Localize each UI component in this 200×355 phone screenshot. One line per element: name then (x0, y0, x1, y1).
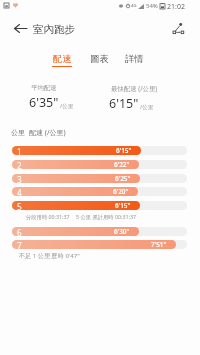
staticText: 6'15" (115, 201, 131, 210)
staticText: /公里 (60, 102, 74, 110)
staticText: 7'51" (151, 240, 167, 249)
staticText: 4 (17, 187, 22, 196)
button[interactable]: 2 (12, 160, 187, 169)
staticText: 21:02 (167, 2, 185, 12)
staticText: 不足 1 公里 歷時 0'47" (19, 251, 80, 259)
staticText: 4G (131, 3, 137, 9)
staticText: 3 (17, 174, 22, 183)
staticText: 公里 (11, 128, 25, 137)
staticText: 最快配速 (/公里) (111, 84, 158, 93)
button[interactable]: 配速 (46, 44, 78, 69)
staticText: /公里 (140, 103, 154, 111)
staticText: 6'35" (29, 94, 59, 111)
staticText: 6'22" (114, 160, 130, 169)
staticText: 5 公里 累計用時 00:31:37 (76, 213, 136, 220)
button[interactable]: 4 (12, 187, 187, 196)
button[interactable]: 1 (12, 146, 187, 155)
button[interactable]: 6 (12, 227, 187, 236)
staticText: 54% (146, 2, 158, 10)
staticText: 6'20" (113, 187, 129, 196)
button[interactable]: Share (169, 19, 187, 37)
staticText: 6'15" (109, 95, 139, 112)
button[interactable]: Back (10, 18, 30, 38)
staticText: 平均配速 (31, 84, 57, 92)
button[interactable]: 5 (12, 201, 187, 210)
staticText: 6'30" (114, 227, 130, 236)
staticText: 圖表 (90, 53, 109, 65)
staticText: 2 (17, 160, 22, 169)
staticText: 7 (17, 240, 22, 249)
button[interactable]: 圖表 (83, 44, 115, 69)
button[interactable]: 詳情 (118, 44, 150, 69)
staticText: 1 (17, 146, 22, 155)
button[interactable]: 7 (12, 240, 187, 249)
staticText: 詳情 (125, 53, 144, 65)
staticText: 室內跑步 (33, 23, 75, 36)
staticText: 5 (17, 201, 22, 210)
staticText: 6'25" (115, 174, 131, 183)
staticText: 6'15" (116, 146, 132, 155)
staticText: 6 (17, 227, 22, 236)
staticText: 配速 (/公里) (29, 128, 66, 138)
staticText: 分段用時 00:31:37 (26, 213, 70, 220)
staticText: 配速 (53, 53, 72, 65)
button[interactable]: 3 (12, 174, 187, 183)
